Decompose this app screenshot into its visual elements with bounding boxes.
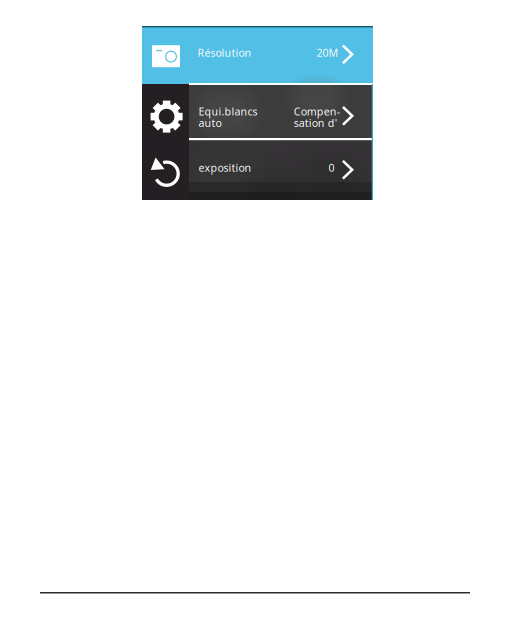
button[interactable]: Equi.blancs (142, 84, 373, 139)
button[interactable]: Résolution (142, 26, 373, 84)
button[interactable]: exposition (142, 139, 373, 200)
staticText: exposition (198, 160, 251, 175)
staticText: Résolution (197, 46, 251, 60)
staticText: Equi.blancs (199, 104, 258, 118)
staticText: 0 (328, 160, 334, 175)
staticText: auto (199, 116, 222, 130)
staticText: Compen- (294, 104, 340, 118)
staticText: sation d' (294, 116, 337, 130)
staticText: 20M (316, 46, 338, 60)
